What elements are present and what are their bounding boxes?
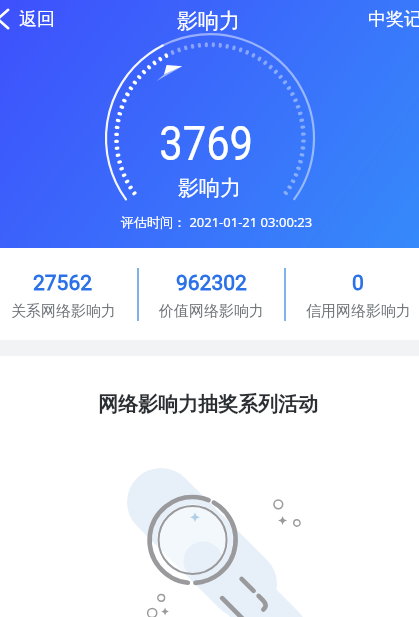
button[interactable]: 中奖记录 (368, 0, 419, 38)
staticText: 影响力 (177, 8, 240, 34)
button[interactable]: 962302 (141, 248, 281, 340)
button[interactable]: 27562 (0, 248, 133, 340)
button[interactable]: 返回 (0, 0, 64, 38)
button[interactable]: 0 (288, 248, 419, 340)
staticText: 962302 (176, 271, 247, 296)
staticText: 影响力 (178, 175, 241, 201)
staticText: 关系网络影响力 (11, 302, 116, 321)
staticText: 返回 (19, 8, 55, 31)
staticText: 27562 (33, 271, 93, 296)
staticText: 信用网络影响力 (306, 302, 411, 321)
staticText: 评估时间： 2021-01-21 03:00:23 (121, 213, 313, 231)
staticText: 中奖记录 (368, 8, 419, 31)
staticText: 价值网络影响力 (159, 302, 264, 321)
staticText: 0 (352, 271, 364, 296)
staticText: 3769 (159, 115, 254, 172)
staticText: 网络影响力抽奖系列活动 (98, 392, 318, 417)
